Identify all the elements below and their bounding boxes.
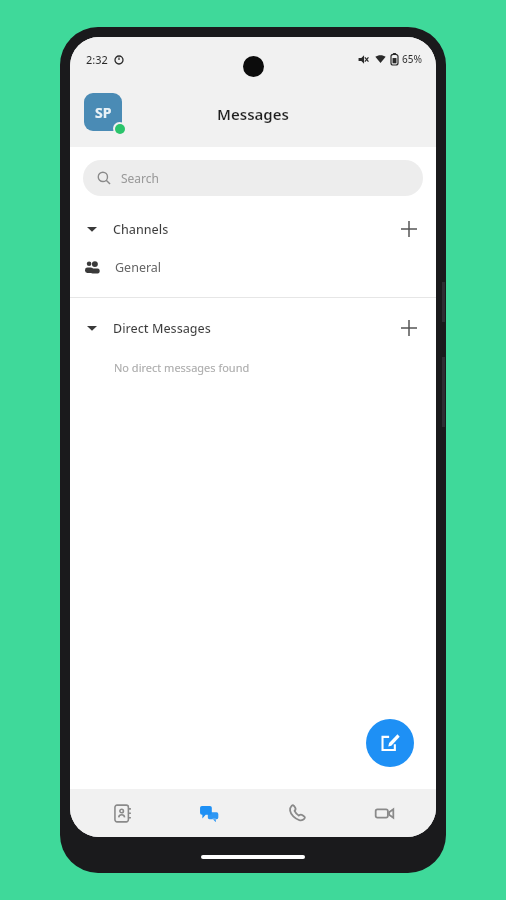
staticText: Direct Messages [113, 320, 211, 337]
staticText: Search [121, 170, 159, 186]
staticText: Channels [113, 221, 169, 238]
button[interactable]: Messages [173, 789, 245, 837]
staticText: 65% [402, 52, 422, 66]
button[interactable]: Profile [84, 93, 126, 135]
staticText: SP [95, 103, 112, 122]
button[interactable]: Contacts [86, 789, 158, 837]
staticText: No direct messages found [114, 360, 250, 375]
button[interactable]: Compose new message [366, 719, 414, 767]
button[interactable]: General [70, 249, 436, 285]
button[interactable]: Direct Messages [70, 308, 436, 348]
staticText: Messages [217, 104, 289, 124]
staticText: 2:32 [86, 52, 108, 67]
button[interactable]: Channels [70, 209, 436, 249]
button[interactable]: Add Channels [392, 212, 426, 246]
button[interactable]: Search [83, 160, 423, 196]
staticText: General [115, 259, 162, 276]
button[interactable]: Calls [261, 789, 333, 837]
button[interactable]: Video [348, 789, 420, 837]
button[interactable]: Add Direct Messages [392, 311, 426, 345]
